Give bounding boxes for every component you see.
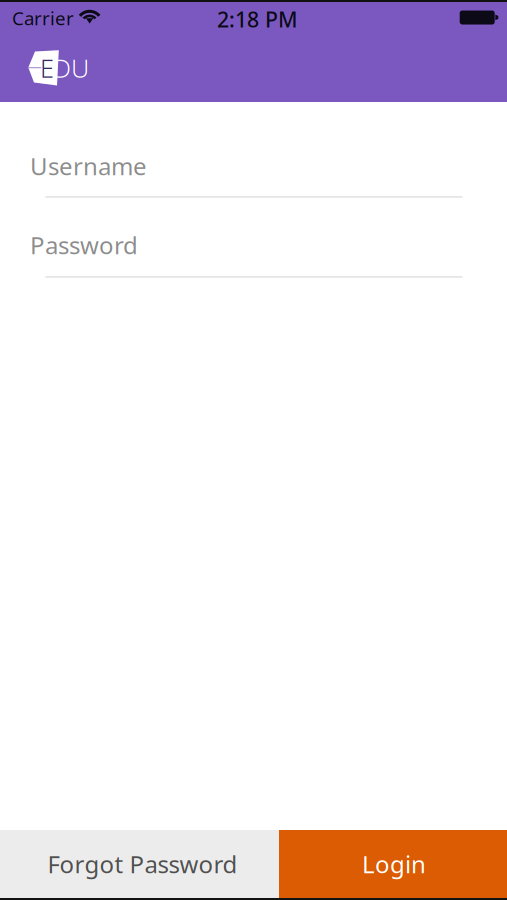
staticText: Password [30, 229, 138, 261]
staticText: Forgot Password [47, 848, 237, 880]
staticText: Carrier [12, 5, 74, 30]
staticText: Login [362, 848, 426, 880]
staticText: E [40, 51, 54, 85]
staticText: DU [53, 51, 89, 85]
staticText: Username [30, 150, 147, 182]
button[interactable]: Forgot Password [0, 830, 279, 900]
button[interactable]: Login [279, 830, 507, 900]
staticText: 2:18 PM [217, 5, 298, 33]
